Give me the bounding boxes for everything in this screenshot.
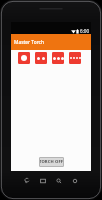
- button[interactable]: Back: [19, 174, 35, 188]
- staticText: Master Torch: [14, 39, 44, 46]
- button[interactable]: Torch mode 2: [35, 52, 47, 64]
- button[interactable]: Search: [51, 174, 67, 188]
- button[interactable]: TORCH OFF: [39, 157, 64, 167]
- button[interactable]: Torch mode 3: [52, 52, 64, 64]
- button[interactable]: Torch mode 1: [18, 52, 30, 64]
- button[interactable]: Torch mode 4: [69, 52, 81, 64]
- button[interactable]: Recents: [35, 174, 51, 188]
- button[interactable]: Home: [67, 174, 83, 188]
- staticText: 6:00: [80, 28, 90, 34]
- staticText: TORCH OFF: [39, 159, 64, 165]
